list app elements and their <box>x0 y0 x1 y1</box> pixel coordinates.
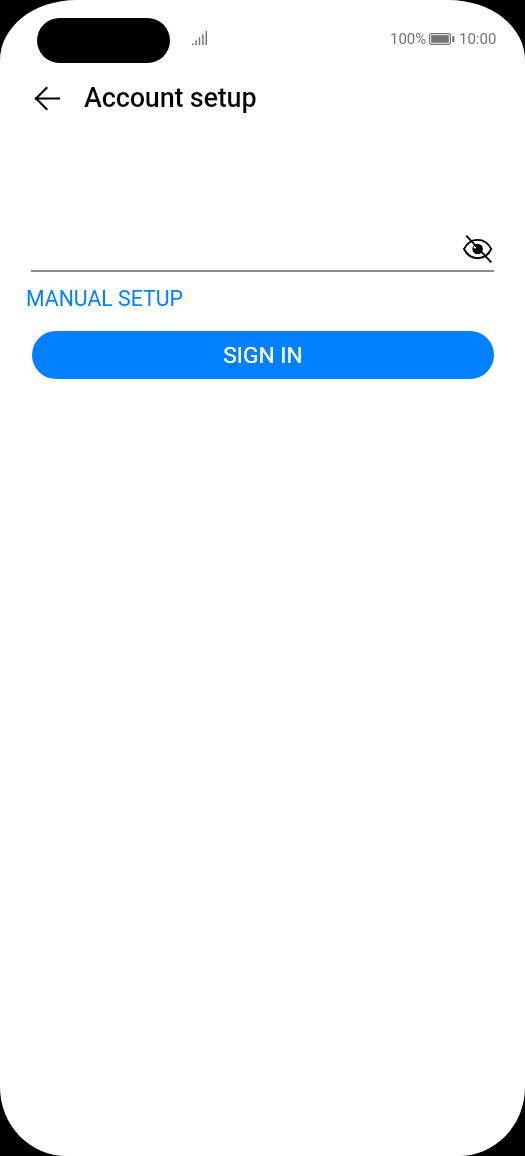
button[interactable]: MANUAL SETUP <box>19 281 191 316</box>
staticText: Account setup <box>84 82 257 114</box>
staticText: SIGN IN <box>223 342 303 369</box>
button[interactable]: Back <box>23 74 71 122</box>
staticText: 100% <box>390 30 427 48</box>
button[interactable]: SIGN IN <box>32 331 494 379</box>
staticText: MANUAL SETUP <box>26 286 184 311</box>
button[interactable]: Show password <box>456 226 501 271</box>
staticText: 10:00 <box>459 30 497 48</box>
button[interactable]: Password <box>31 226 494 272</box>
